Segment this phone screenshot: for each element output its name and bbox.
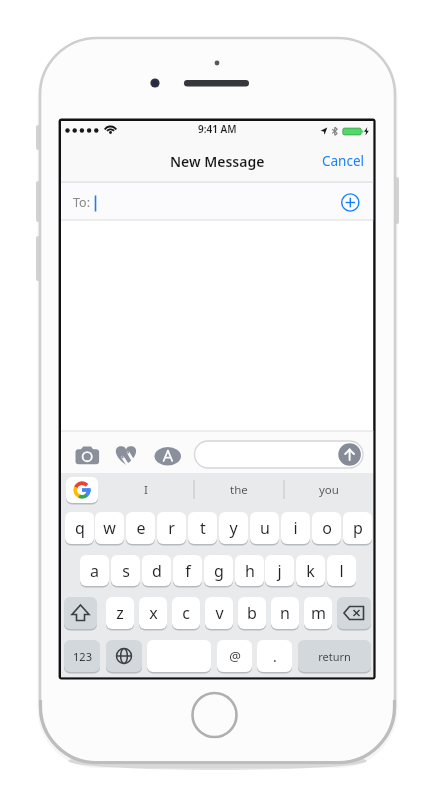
staticText: q — [75, 517, 85, 539]
staticText: New Message — [170, 152, 265, 171]
button[interactable]: . — [257, 640, 292, 672]
button[interactable]: g — [204, 555, 233, 586]
button[interactable]: the — [194, 477, 284, 503]
staticText: you — [319, 482, 339, 498]
staticText: p — [353, 517, 363, 539]
staticText: e — [136, 517, 146, 539]
staticText: f — [185, 560, 191, 582]
staticText: y — [229, 517, 238, 539]
button[interactable]: c — [172, 597, 200, 629]
staticText: o — [322, 517, 332, 539]
staticText: the — [230, 482, 248, 498]
button[interactable]: o — [312, 512, 341, 544]
button[interactable]: p — [343, 512, 372, 544]
staticText: u — [260, 517, 270, 539]
staticText: t — [200, 517, 206, 539]
button[interactable]: f — [173, 555, 202, 586]
button[interactable]: you — [284, 477, 373, 503]
button[interactable] — [73, 444, 101, 468]
staticText: 9:41 AM — [198, 122, 237, 136]
button[interactable]: s — [111, 555, 140, 586]
button[interactable]: return — [298, 640, 371, 672]
staticText: To: — [73, 194, 90, 211]
staticText: 123 — [73, 649, 92, 664]
button[interactable]: x — [139, 597, 167, 629]
staticText: d — [152, 560, 162, 582]
button[interactable]: b — [238, 597, 266, 629]
button[interactable] — [147, 640, 211, 672]
button[interactable]: w — [95, 512, 124, 544]
staticText: g — [214, 560, 224, 582]
staticText: m — [311, 602, 326, 624]
button[interactable] — [152, 444, 183, 468]
staticText: z — [116, 602, 124, 624]
button[interactable] — [337, 597, 371, 629]
button[interactable] — [340, 192, 361, 213]
staticText: l — [339, 560, 344, 582]
staticText: I — [144, 482, 148, 498]
staticText: c — [182, 602, 190, 624]
button[interactable]: @ — [217, 640, 252, 672]
button[interactable]: q — [65, 512, 94, 544]
staticText: return — [318, 649, 351, 664]
button[interactable]: n — [271, 597, 299, 629]
staticText: v — [215, 602, 224, 624]
staticText: x — [149, 602, 158, 624]
staticText: j — [277, 560, 282, 582]
staticText: s — [122, 560, 130, 582]
button[interactable] — [66, 477, 98, 503]
staticText: h — [245, 560, 255, 582]
button[interactable]: k — [296, 555, 325, 586]
staticText: b — [247, 602, 257, 624]
button[interactable]: h — [235, 555, 264, 586]
button[interactable] — [106, 640, 142, 672]
button[interactable]: r — [157, 512, 186, 544]
staticText: k — [306, 560, 315, 582]
staticText: @ — [229, 647, 241, 665]
button[interactable]: u — [250, 512, 279, 544]
button[interactable] — [338, 443, 361, 466]
staticText: a — [90, 560, 99, 582]
button[interactable]: m — [304, 597, 332, 629]
button[interactable]: Cancel — [322, 148, 368, 174]
button[interactable]: d — [142, 555, 171, 586]
staticText: w — [103, 517, 116, 539]
staticText: i — [293, 517, 298, 539]
button[interactable] — [112, 444, 139, 468]
button[interactable] — [64, 597, 97, 629]
button[interactable]: a — [80, 555, 109, 586]
button[interactable]: i — [281, 512, 310, 544]
button[interactable]: y — [219, 512, 248, 544]
button[interactable]: z — [106, 597, 134, 629]
button[interactable]: I — [98, 477, 194, 503]
staticText: r — [168, 517, 175, 539]
button[interactable]: v — [205, 597, 233, 629]
button[interactable]: l — [327, 555, 356, 586]
staticText: n — [280, 602, 290, 624]
staticText: . — [273, 647, 277, 666]
button[interactable]: j — [265, 555, 294, 586]
staticText: Cancel — [322, 152, 365, 170]
button[interactable]: 123 — [64, 640, 100, 672]
button[interactable]: t — [188, 512, 217, 544]
button[interactable]: e — [126, 512, 155, 544]
